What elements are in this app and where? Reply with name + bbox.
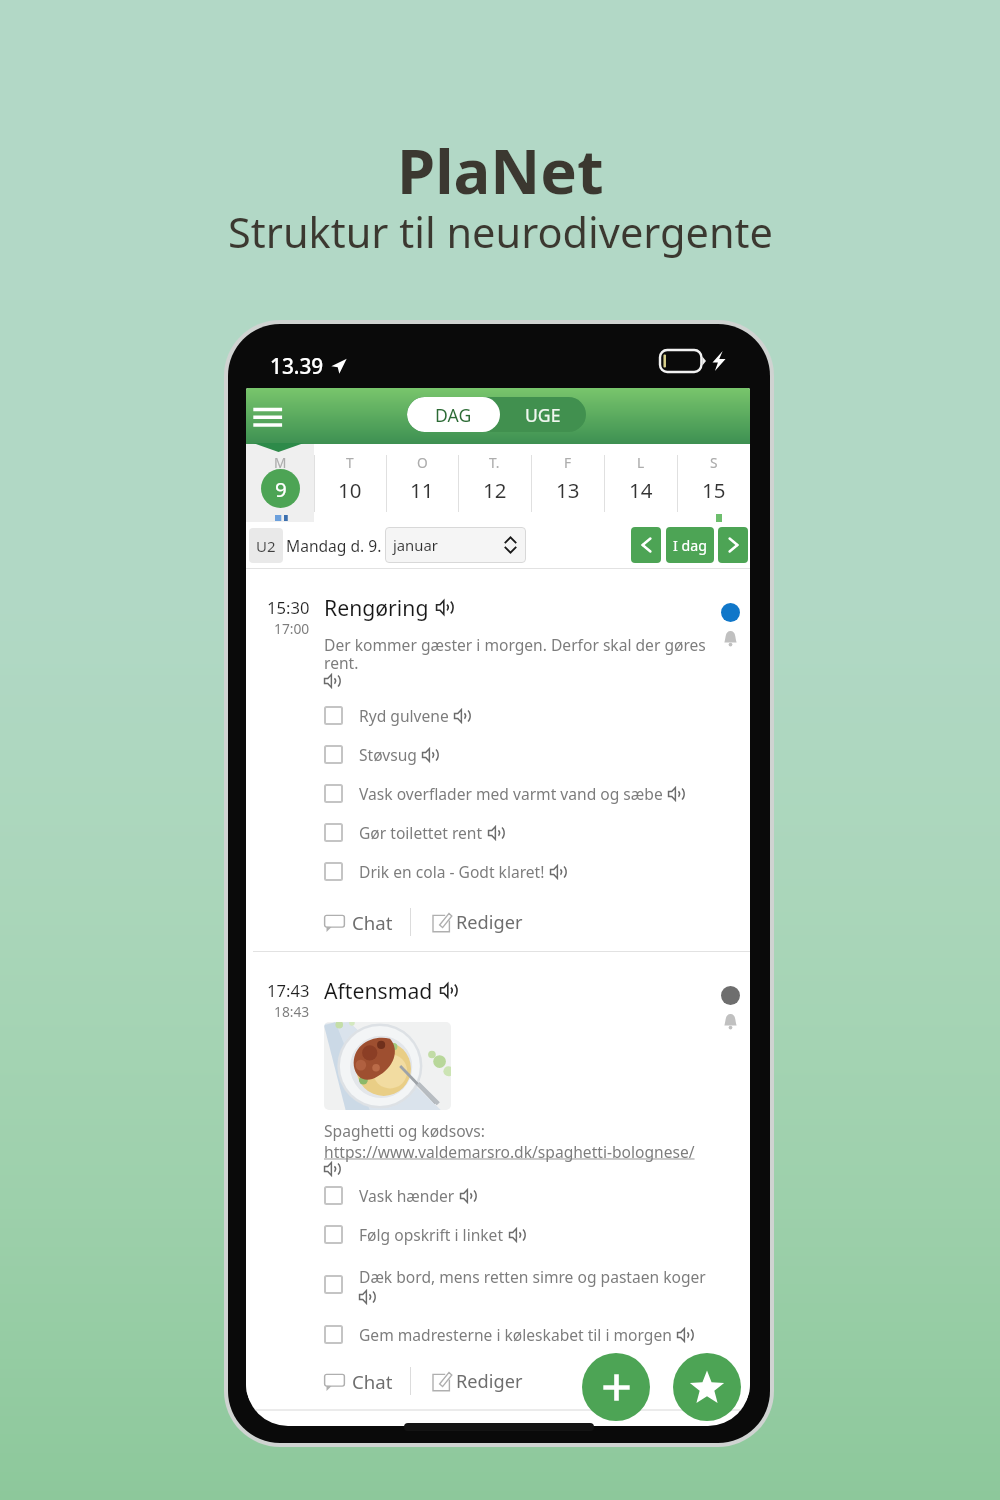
button[interactable]: Drik en cola - Godt klaret! <box>324 852 711 891</box>
button[interactable]: Følg opskrift i linket <box>324 1215 711 1254</box>
staticText: DAG <box>435 403 472 427</box>
button[interactable]: O <box>386 444 458 522</box>
button[interactable]: Støvsug <box>324 735 711 774</box>
staticText: 11 <box>410 476 434 504</box>
button[interactable]: Next day <box>718 527 748 563</box>
staticText: M <box>274 453 287 472</box>
button[interactable]: Vask hænder <box>324 1176 711 1215</box>
button[interactable]: Rediger <box>432 908 523 937</box>
staticText: PlaNet <box>397 128 604 212</box>
button[interactable]: Chat <box>324 1367 393 1396</box>
staticText: Chat <box>352 910 393 935</box>
staticText: 13.39 <box>270 352 324 380</box>
button[interactable]: Dæk bord, mens retten simre og pastaen k… <box>324 1254 711 1315</box>
staticText: Rediger <box>456 910 523 935</box>
staticText: Gør toilettet rent <box>359 822 483 843</box>
staticText: U2 <box>256 536 276 556</box>
button[interactable]: Rediger <box>432 1367 523 1396</box>
staticText: Chat <box>352 1369 393 1394</box>
button[interactable]: Favourites <box>673 1353 741 1421</box>
staticText: F <box>564 453 572 472</box>
staticText: I dag <box>673 536 707 555</box>
button[interactable]: L <box>604 444 677 522</box>
button[interactable]: Ryd gulvene <box>324 696 711 735</box>
staticText: Dæk bord, mens retten simre og pastaen k… <box>359 1266 706 1287</box>
staticText: Ryd gulvene <box>359 705 449 726</box>
staticText: januar <box>393 535 438 555</box>
staticText: 17:43 <box>267 979 310 1002</box>
button[interactable]: januar <box>385 527 526 563</box>
staticText: O <box>417 453 428 472</box>
staticText: Drik en cola - Godt klaret! <box>359 861 545 882</box>
staticText: Rediger <box>456 1369 523 1394</box>
button[interactable]: UGE <box>500 397 586 432</box>
button[interactable]: F <box>531 444 604 522</box>
staticText: Vask overflader med varmt vand og sæbe <box>359 783 663 804</box>
staticText: Følg opskrift i linket <box>359 1224 504 1245</box>
staticText: 9 <box>275 475 287 503</box>
staticText: 12 <box>483 476 507 504</box>
button[interactable]: M <box>246 444 314 522</box>
staticText: 18:43 <box>274 1002 310 1021</box>
staticText: UGE <box>525 403 561 427</box>
button[interactable]: Vask overflader med varmt vand og sæbe <box>324 774 711 813</box>
button[interactable]: Menu <box>248 401 288 431</box>
staticText: T. <box>489 453 500 472</box>
button[interactable]: DAG <box>407 397 500 432</box>
staticText: Spaghetti og kødsovs: <box>324 1120 485 1141</box>
staticText: T <box>346 453 354 472</box>
button[interactable]: I dag <box>666 527 714 563</box>
staticText: 14 <box>629 476 653 504</box>
button[interactable]: Gem madresterne i køleskabet til i morge… <box>324 1315 711 1354</box>
button[interactable]: Gør toilettet rent <box>324 813 711 852</box>
staticText: Struktur til neurodivergente <box>228 204 773 261</box>
staticText: 17:00 <box>274 619 310 638</box>
staticText: 13 <box>556 476 580 504</box>
button[interactable]: S <box>677 444 750 522</box>
button[interactable]: Add <box>582 1353 650 1421</box>
button[interactable]: Previous day <box>631 527 661 563</box>
staticText: 15 <box>702 476 726 504</box>
button[interactable]: T. <box>458 444 531 522</box>
staticText: 10 <box>338 476 362 504</box>
staticText: 15:30 <box>267 596 310 619</box>
staticText: Vask hænder <box>359 1185 455 1206</box>
staticText: L <box>637 453 645 472</box>
button[interactable]: Chat <box>324 908 393 937</box>
button[interactable]: T <box>314 444 386 522</box>
staticText: S <box>710 453 718 472</box>
staticText: Der kommer gæster i morgen. Derfor skal … <box>324 634 711 674</box>
staticText: Rengøring <box>324 593 429 622</box>
staticText: Støvsug <box>359 744 417 765</box>
staticText: Aftensmad <box>324 976 433 1005</box>
staticText: https://www.valdemarsro.dk/spaghetti-bol… <box>324 1141 695 1162</box>
staticText: Mandag d. 9. <box>286 535 382 556</box>
staticText: Gem madresterne i køleskabet til i morge… <box>359 1324 672 1345</box>
